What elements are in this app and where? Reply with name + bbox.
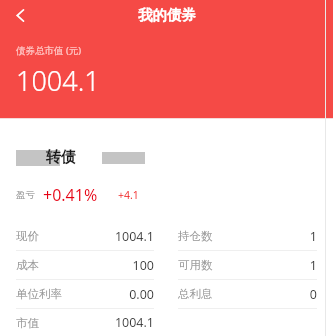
staticText: +4.1 (118, 188, 139, 202)
button[interactable]: 转债 (16, 148, 333, 167)
staticText: 我的债券 (138, 6, 196, 24)
staticText: 1 (309, 257, 317, 274)
staticText: 可用数 (178, 258, 213, 272)
staticText: 单位利率 (16, 287, 62, 301)
button[interactable]: Back (6, 1, 34, 29)
staticText: 1 (309, 228, 317, 245)
staticText: +0.41% (43, 184, 98, 206)
staticText: 0.00 (129, 286, 154, 303)
staticText: 成本 (16, 258, 39, 272)
staticText: 盈亏 (16, 189, 35, 201)
staticText: 债券总市值 (元) (16, 44, 82, 57)
staticText: 1004.1 (114, 314, 154, 331)
staticText: 100 (132, 257, 154, 274)
staticText: 市值 (16, 316, 39, 330)
staticText: 0 (309, 286, 317, 303)
staticText: 现价 (16, 229, 39, 243)
staticText: 总利息 (178, 287, 213, 301)
staticText: 持仓数 (178, 229, 213, 243)
staticText: 1004.1 (16, 62, 100, 99)
staticText: 1004.1 (114, 228, 154, 245)
staticText: 转债 (46, 148, 76, 167)
